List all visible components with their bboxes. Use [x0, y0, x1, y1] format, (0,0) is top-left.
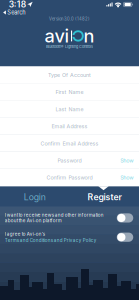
- staticText: First Name: [55, 89, 83, 95]
- staticText: Login: [24, 192, 46, 202]
- staticText: Version 3.0.0 (1482): [49, 16, 90, 21]
- button[interactable]: Login: [0, 186, 70, 208]
- staticText: Last Name: [55, 106, 83, 112]
- button[interactable]: First Name: [0, 84, 139, 101]
- staticText: Bluetooth® Lighting Controls: [46, 44, 93, 49]
- staticText: Register: [87, 192, 121, 202]
- staticText: Type Of Account: [48, 72, 91, 78]
- staticText: Search: [7, 9, 25, 16]
- staticText: Confirm Password: [46, 174, 92, 181]
- staticText: Confirm Email Address: [40, 140, 98, 147]
- staticText: I agree to Avi-on's: [5, 231, 45, 237]
- staticText: Email Address: [51, 123, 87, 130]
- button[interactable]: I want to receive news and other informa…: [0, 208, 139, 228]
- staticText: avi: [44, 25, 69, 47]
- staticText: Password: [57, 157, 81, 164]
- button[interactable]: Confirm Password: [0, 169, 139, 186]
- staticText: Terms and Conditions and Privacy Policy: [5, 238, 97, 243]
- button[interactable]: Confirm Email Address: [0, 135, 139, 152]
- staticText: n: [83, 25, 94, 47]
- button[interactable]: Email Address: [0, 118, 139, 135]
- staticText: I want to receive news and other informa…: [5, 212, 104, 223]
- button[interactable]: Register: [69, 186, 139, 208]
- button[interactable]: Password: [0, 152, 139, 169]
- button[interactable]: Search: [2, 9, 26, 16]
- button[interactable]: I agree to Avi-on's: [0, 228, 139, 247]
- button[interactable]: Toggle: [117, 213, 133, 222]
- staticText: Show: [120, 174, 133, 181]
- button[interactable]: Toggle: [117, 233, 133, 242]
- staticText: 3:18: [9, 0, 26, 10]
- staticText: Show: [120, 157, 133, 164]
- button[interactable]: Type Of Account: [0, 66, 139, 84]
- button[interactable]: Last Name: [0, 101, 139, 118]
